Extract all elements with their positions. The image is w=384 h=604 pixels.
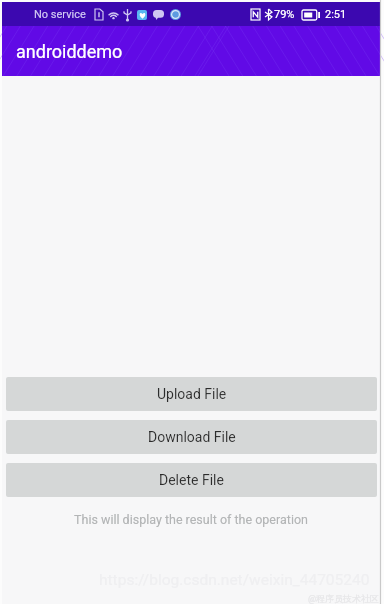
button[interactable]: Download File <box>6 420 377 454</box>
staticText: Delete File <box>159 472 224 488</box>
staticText: 79% <box>274 8 295 21</box>
staticText: This will display the result of the oper… <box>2 512 380 527</box>
staticText: No service <box>34 8 86 21</box>
staticText: @程序员技术社区 <box>308 593 380 604</box>
button[interactable]: Upload File <box>6 377 377 411</box>
staticText: androiddemo <box>16 41 123 62</box>
staticText: 2:51 <box>325 8 347 21</box>
staticText: Upload File <box>157 386 227 402</box>
button[interactable]: Delete File <box>6 463 377 497</box>
staticText: Download File <box>148 429 236 445</box>
